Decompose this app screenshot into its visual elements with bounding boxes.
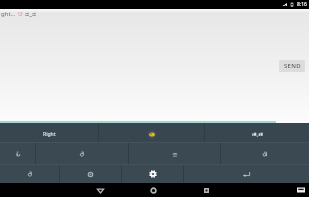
button[interactable]: Suggestion: [205, 123, 309, 142]
button[interactable]: SEND: [279, 60, 305, 72]
button[interactable]: Hide keyboard: [296, 186, 306, 194]
button[interactable]: [129, 143, 220, 164]
button[interactable]: Back: [74, 183, 127, 197]
button[interactable]: Right: [0, 123, 98, 142]
staticText: SEND: [284, 62, 301, 70]
button[interactable]: [221, 143, 309, 164]
staticText: ಆ: [18, 10, 23, 17]
button[interactable]: Settings: [122, 165, 183, 183]
button[interactable]: Enter: [184, 165, 309, 183]
staticText: Right: [43, 131, 56, 138]
staticText: ght…: [1, 10, 16, 18]
button[interactable]: Change language: [60, 165, 121, 183]
button[interactable]: [0, 165, 59, 183]
button[interactable]: [0, 143, 35, 164]
button[interactable]: Home: [127, 183, 180, 197]
button[interactable]: Emoji suggestion: [99, 123, 204, 142]
button[interactable]: [36, 143, 128, 164]
button[interactable]: Recent apps: [180, 183, 233, 197]
staticText: ಡ_ಡ: [25, 9, 37, 18]
staticText: 8:16: [297, 1, 307, 8]
